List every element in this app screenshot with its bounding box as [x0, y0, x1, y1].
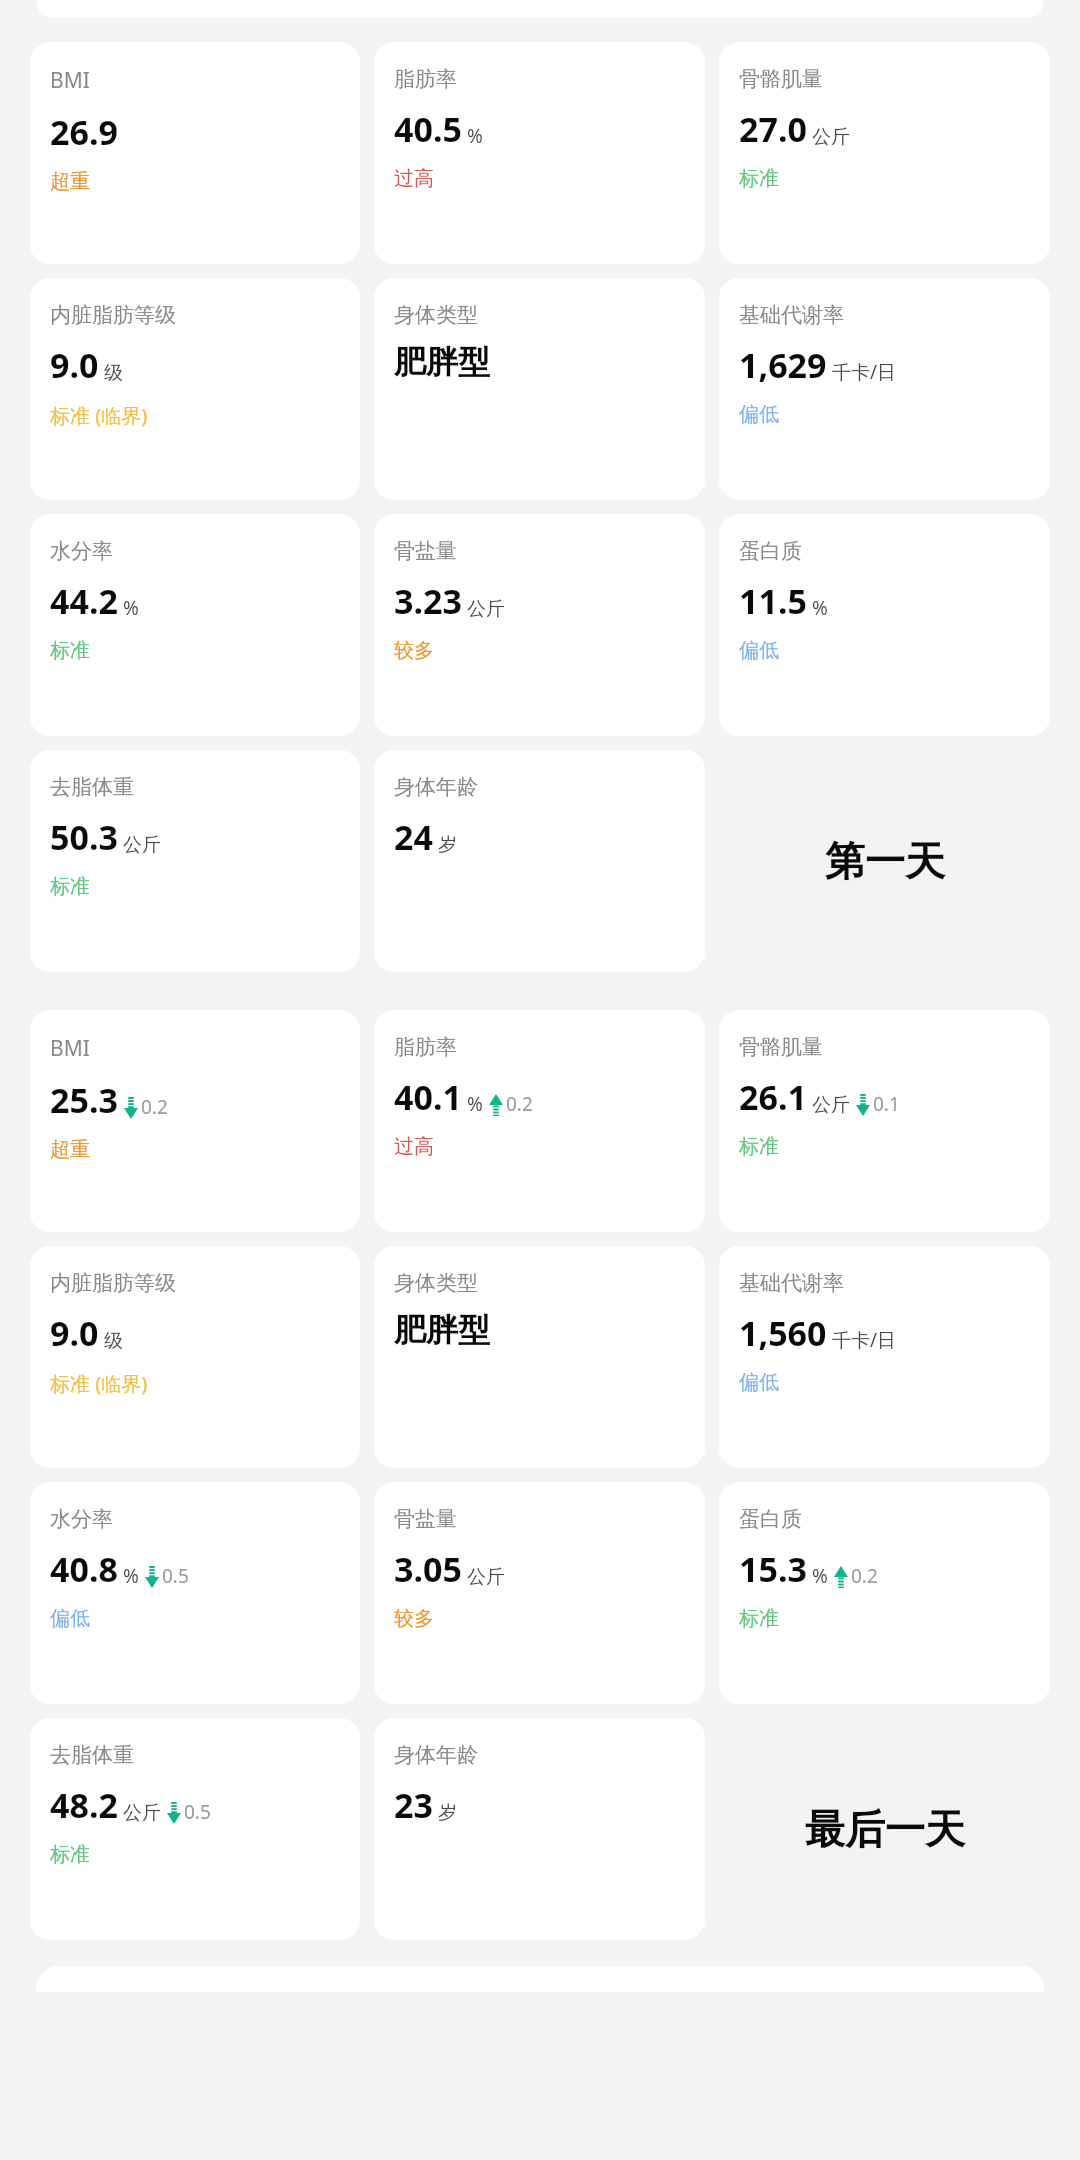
staticText: 基础代谢率	[739, 1270, 844, 1296]
staticText: 标准 (临界)	[50, 1370, 148, 1397]
staticText: 蛋白质	[739, 1506, 802, 1532]
staticText: 1,629	[739, 342, 827, 388]
staticText: 千卡/日	[832, 359, 897, 385]
button[interactable]: 内脏脂肪等级	[30, 1246, 360, 1468]
other: Increase	[489, 1094, 503, 1116]
button[interactable]: 身体年龄	[374, 750, 705, 972]
staticText: 0.2	[851, 1563, 878, 1589]
staticText: 3.23	[394, 578, 462, 624]
button[interactable]: 内脏脂肪等级	[30, 278, 360, 500]
staticText: 千卡/日	[832, 1327, 897, 1353]
staticText: 偏低	[739, 402, 779, 427]
staticText: 0.2	[506, 1091, 533, 1117]
staticText: 公斤	[812, 125, 850, 149]
staticText: 超重	[50, 169, 90, 194]
staticText: 岁	[438, 1801, 457, 1825]
staticText: 偏低	[739, 1370, 779, 1395]
other: Decrease	[124, 1097, 138, 1119]
button[interactable]: 蛋白质	[719, 1482, 1050, 1704]
staticText: 第一天	[825, 836, 945, 886]
staticText: 水分率	[50, 1506, 113, 1532]
staticText: 公斤	[123, 1801, 161, 1825]
button[interactable]: 脂肪率	[374, 42, 705, 264]
staticText: 26.1	[739, 1074, 807, 1120]
staticText: 去脂体重	[50, 1742, 134, 1768]
button[interactable]: 水分率	[30, 514, 360, 736]
button[interactable]: 水分率	[30, 1482, 360, 1704]
staticText: %	[123, 595, 139, 621]
staticText: %	[812, 595, 828, 621]
staticText: 过高	[394, 166, 434, 191]
staticText: 骨骼肌量	[739, 1034, 823, 1060]
button[interactable]: BMI	[30, 1010, 360, 1232]
staticText: 1,560	[739, 1310, 827, 1356]
staticText: 水分率	[50, 538, 113, 564]
staticText: 48.2	[50, 1782, 118, 1828]
staticText: 蛋白质	[739, 538, 802, 564]
staticText: 15.3	[739, 1546, 807, 1592]
staticText: 40.8	[50, 1546, 118, 1592]
button[interactable]: 基础代谢率	[719, 1246, 1050, 1468]
staticText: 最后一天	[805, 1804, 965, 1854]
staticText: %	[812, 1563, 828, 1589]
staticText: 岁	[438, 833, 457, 857]
staticText: 身体类型	[394, 302, 478, 328]
staticText: 标准	[739, 166, 779, 191]
staticText: 0.5	[162, 1563, 189, 1589]
staticText: 骨骼肌量	[739, 66, 823, 92]
other: Decrease	[856, 1094, 870, 1116]
other: Decrease	[145, 1566, 159, 1588]
button[interactable]: 骨骼肌量	[719, 42, 1050, 264]
button[interactable]: 脂肪率	[374, 1010, 705, 1232]
button[interactable]: BMI	[30, 42, 360, 264]
staticText: 较多	[394, 1606, 434, 1631]
staticText: 骨盐量	[394, 1506, 457, 1532]
staticText: 标准	[50, 874, 90, 899]
button[interactable]: 蛋白质	[719, 514, 1050, 736]
staticText: 脂肪率	[394, 1034, 457, 1060]
staticText: 内脏脂肪等级	[50, 1270, 176, 1296]
button[interactable]: 骨盐量	[374, 1482, 705, 1704]
staticText: %	[123, 1563, 139, 1589]
button[interactable]: 去脂体重	[30, 750, 360, 972]
staticText: 标准	[739, 1134, 779, 1159]
button[interactable]: 身体类型	[374, 1246, 705, 1468]
staticText: 脂肪率	[394, 66, 457, 92]
staticText: 肥胖型	[394, 342, 490, 382]
other: Decrease	[167, 1802, 181, 1824]
button[interactable]: 身体类型	[374, 278, 705, 500]
staticText: 公斤	[812, 1093, 850, 1117]
button[interactable]: 去脂体重	[30, 1718, 360, 1940]
staticText: 骨盐量	[394, 538, 457, 564]
staticText: %	[467, 123, 483, 149]
other: Increase	[834, 1566, 848, 1588]
staticText: 级	[104, 1329, 123, 1353]
staticText: 较多	[394, 638, 434, 663]
button[interactable]: 身体年龄	[374, 1718, 705, 1940]
button[interactable]: 基础代谢率	[719, 278, 1050, 500]
button[interactable]: 骨骼肌量	[719, 1010, 1050, 1232]
staticText: 26.9	[50, 109, 118, 155]
staticText: 23	[394, 1782, 433, 1828]
staticText: 级	[104, 361, 123, 385]
staticText: 0.5	[184, 1799, 211, 1825]
staticText: 公斤	[467, 1565, 505, 1589]
staticText: 25.3	[50, 1077, 118, 1123]
staticText: 偏低	[739, 638, 779, 663]
staticText: 50.3	[50, 814, 118, 860]
staticText: 24	[394, 814, 433, 860]
staticText: 身体类型	[394, 1270, 478, 1296]
staticText: 标准 (临界)	[50, 402, 148, 429]
staticText: 标准	[50, 638, 90, 663]
staticText: 标准	[739, 1606, 779, 1631]
staticText: 0.1	[873, 1091, 900, 1117]
staticText: 0.2	[141, 1094, 168, 1120]
button[interactable]: 骨盐量	[374, 514, 705, 736]
staticText: 40.1	[394, 1074, 462, 1120]
staticText: 27.0	[739, 106, 807, 152]
staticText: 内脏脂肪等级	[50, 302, 176, 328]
staticText: 基础代谢率	[739, 302, 844, 328]
staticText: 9.0	[50, 342, 99, 388]
staticText: 肥胖型	[394, 1310, 490, 1350]
staticText: BMI	[50, 66, 90, 95]
